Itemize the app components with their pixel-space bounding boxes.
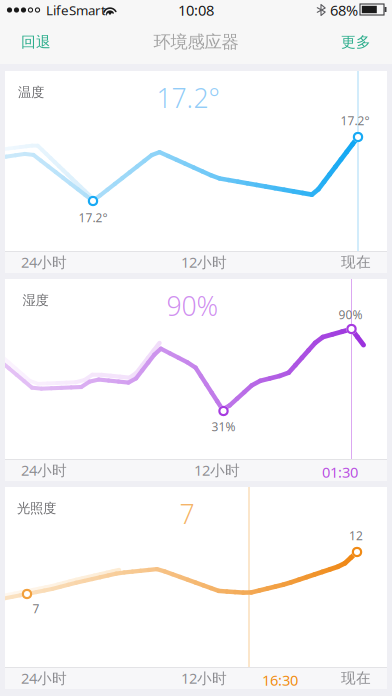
button[interactable]: 回退: [21, 33, 51, 51]
staticText: 12小时: [194, 460, 240, 480]
staticText: 17.2°: [156, 80, 219, 115]
staticText: 7: [179, 496, 194, 531]
staticText: 12: [349, 527, 363, 543]
staticText: 12小时: [181, 668, 227, 688]
staticText: 10:08: [178, 0, 214, 20]
staticText: 68%: [330, 0, 358, 20]
button[interactable]: 更多: [341, 33, 371, 51]
staticText: 24小时: [21, 668, 67, 688]
staticText: 24小时: [21, 460, 67, 480]
staticText: 环境感应器: [153, 31, 238, 53]
staticText: 7: [32, 600, 39, 616]
staticText: 90%: [338, 306, 362, 322]
staticText: 24小时: [21, 252, 67, 272]
staticText: 17.2°: [78, 209, 107, 225]
staticText: 更多: [341, 33, 371, 51]
staticText: LifeSmart: [46, 1, 106, 19]
staticText: 12小时: [181, 252, 227, 272]
staticText: 现在: [341, 669, 371, 687]
staticText: 31%: [211, 418, 235, 434]
staticText: 01:30: [322, 462, 358, 482]
staticText: 16:30: [262, 670, 298, 690]
staticText: 90%: [166, 288, 218, 323]
staticText: 湿度: [22, 292, 48, 308]
staticText: 温度: [18, 84, 44, 100]
staticText: 回退: [21, 33, 51, 51]
staticText: 现在: [341, 253, 371, 271]
staticText: 光照度: [17, 500, 56, 516]
staticText: 17.2°: [340, 112, 369, 128]
